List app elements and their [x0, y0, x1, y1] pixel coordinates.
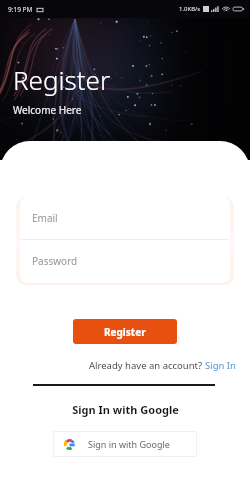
staticText: Password	[32, 254, 78, 268]
staticText: 1.0KB/s	[179, 5, 201, 13]
button[interactable]: Email	[20, 197, 230, 239]
staticText: Email	[32, 211, 58, 225]
staticText: Sign In with Google	[72, 402, 179, 417]
staticText: Already have an account?	[89, 359, 205, 372]
button[interactable]: Register	[73, 319, 177, 344]
staticText: Welcome Here	[13, 103, 82, 117]
button[interactable]: Google logo	[53, 431, 197, 457]
button[interactable]: Sign In	[205, 359, 236, 372]
staticText: 9:19 PM	[8, 5, 33, 14]
button[interactable]: Password	[20, 240, 230, 282]
staticText: Register	[13, 62, 111, 97]
staticText: Sign in with Google	[88, 438, 170, 450]
other: Google logo	[64, 439, 75, 450]
staticText: Sign In	[205, 359, 236, 372]
staticText: Register	[104, 325, 146, 339]
